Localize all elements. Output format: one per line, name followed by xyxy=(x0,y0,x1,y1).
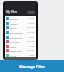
staticText: 1.8 GB xyxy=(28,36,35,39)
staticText: My Files xyxy=(6,10,18,14)
button[interactable]: Documents xyxy=(5,30,36,35)
staticText: Apps xyxy=(10,45,16,48)
staticText: 210 MB xyxy=(27,31,35,34)
staticText: 2.1 GB xyxy=(28,45,35,48)
staticText: Downloads xyxy=(10,36,23,39)
staticText: Large files xyxy=(10,49,22,52)
staticText: Archives xyxy=(10,40,20,43)
button[interactable]: Videos xyxy=(5,21,36,26)
button[interactable]: Trash xyxy=(5,53,36,58)
staticText: 640 MB xyxy=(27,40,35,43)
staticText: 820 MB xyxy=(27,26,35,29)
button[interactable]: Downloads xyxy=(5,35,36,40)
staticText: 3.4 GB xyxy=(28,22,35,25)
staticText: Photos xyxy=(10,17,18,20)
staticText: Empty xyxy=(29,54,35,57)
button[interactable]: Photos xyxy=(5,16,36,21)
button[interactable]: Search xyxy=(27,11,35,14)
staticText: Documents xyxy=(10,31,23,34)
staticText: Videos xyxy=(10,22,18,25)
button[interactable]: Apps xyxy=(5,44,36,49)
staticText: Music xyxy=(10,26,17,29)
button[interactable]: Music xyxy=(5,25,36,30)
button[interactable]: Large files xyxy=(5,48,36,53)
staticText: Trash xyxy=(10,54,17,57)
button[interactable]: Archives xyxy=(5,39,36,44)
staticText: 1.2 GB xyxy=(28,17,35,20)
staticText: 930 MB xyxy=(27,49,35,52)
staticText: Manage Files xyxy=(19,64,46,69)
